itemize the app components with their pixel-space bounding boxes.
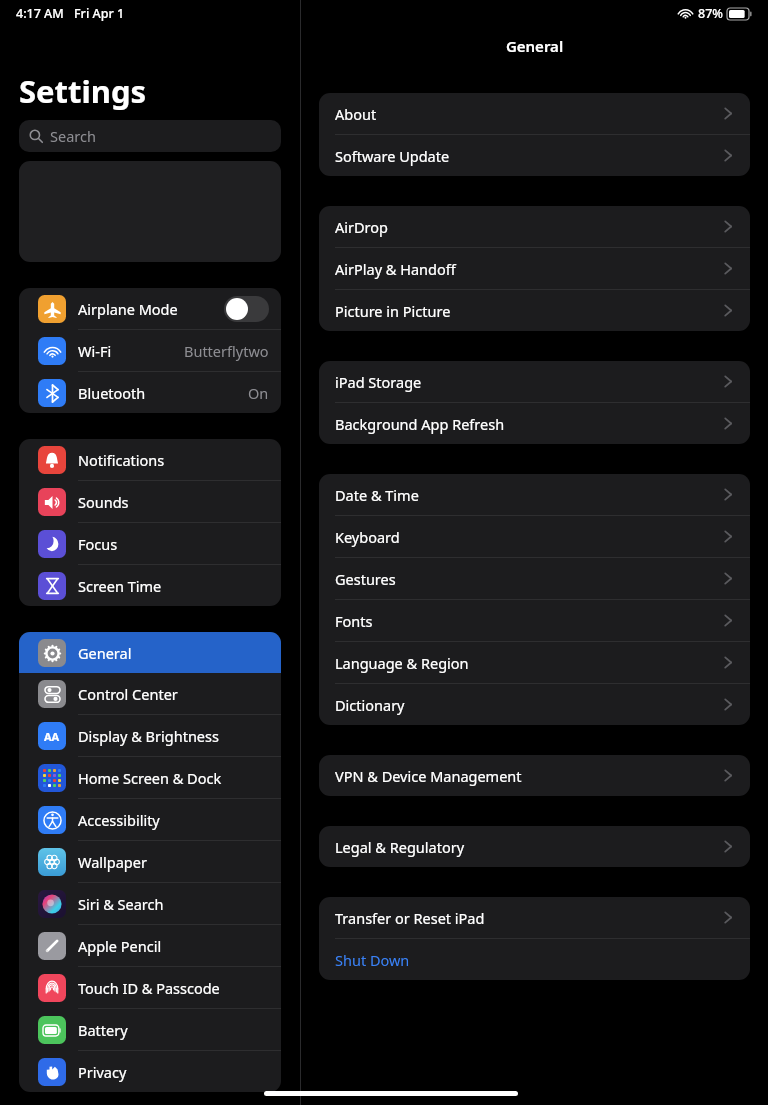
staticText: Fri Apr 1 [74, 5, 125, 22]
staticText: Keyboard [335, 527, 724, 547]
button[interactable]: Gestures [319, 558, 750, 599]
button[interactable]: Language & Region [319, 642, 750, 683]
button[interactable]: Airplane Mode [19, 288, 281, 330]
staticText: Bluetooth [78, 383, 248, 403]
staticText: Date & Time [335, 485, 724, 505]
button[interactable]: Background App Refresh [319, 403, 750, 444]
staticText: Legal & Regulatory [335, 837, 724, 857]
staticText: Notifications [78, 450, 269, 470]
staticText: AirDrop [335, 217, 724, 237]
button[interactable]: Wi-Fi [19, 330, 281, 372]
button[interactable]: AA [19, 715, 281, 757]
staticText: Apple Pencil [78, 936, 269, 956]
staticText: Battery [78, 1020, 269, 1040]
staticText: Fonts [335, 611, 724, 631]
staticText: Airplane Mode [78, 299, 224, 319]
button[interactable]: Notifications [19, 439, 281, 481]
staticText: VPN & Device Management [335, 766, 724, 786]
staticText: Home Screen & Dock [78, 768, 269, 788]
button[interactable]: Keyboard [319, 516, 750, 557]
button[interactable]: Bluetooth [19, 372, 281, 413]
staticText: Gestures [335, 569, 724, 589]
button[interactable]: Transfer or Reset iPad [319, 897, 750, 938]
button[interactable]: Touch ID & Passcode [19, 967, 281, 1009]
button[interactable]: Picture in Picture [319, 290, 750, 331]
staticText: AirPlay & Handoff [335, 259, 724, 279]
button[interactable]: Siri & Search [19, 883, 281, 925]
button[interactable]: Legal & Regulatory [319, 826, 750, 867]
staticText: Control Center [78, 684, 269, 704]
staticText: Search [50, 126, 96, 146]
button[interactable]: iPad Storage [319, 361, 750, 402]
staticText: Language & Region [335, 653, 724, 673]
button[interactable]: General [19, 632, 281, 673]
staticText: Software Update [335, 146, 724, 166]
staticText: Settings [19, 70, 147, 112]
button[interactable]: Wallpaper [19, 841, 281, 883]
button[interactable]: AirPlay & Handoff [319, 248, 750, 289]
button[interactable]: Apple Pencil [19, 925, 281, 967]
button[interactable]: Software Update [319, 135, 750, 176]
button[interactable]: Search [19, 120, 281, 152]
staticText: Screen Time [78, 576, 269, 596]
staticText: Privacy [78, 1062, 269, 1082]
staticText: Touch ID & Passcode [78, 978, 269, 998]
staticText: Focus [78, 534, 269, 554]
staticText: General [301, 36, 768, 56]
staticText: Dictionary [335, 695, 724, 715]
button[interactable]: Control Center [19, 673, 281, 715]
staticText: Shut Down [335, 950, 732, 970]
button[interactable]: Airplane Mode toggle [224, 296, 269, 322]
button[interactable]: VPN & Device Management [319, 755, 750, 796]
staticText: Wallpaper [78, 852, 269, 872]
staticText: Accessibility [78, 810, 269, 830]
button[interactable]: AirDrop [319, 206, 750, 247]
staticText: AA [44, 729, 60, 744]
staticText: On [248, 383, 269, 403]
button[interactable]: Dictionary [319, 684, 750, 725]
staticText: 4:17 AM [16, 5, 64, 22]
button[interactable]: Privacy [19, 1051, 281, 1092]
staticText: Transfer or Reset iPad [335, 908, 724, 928]
staticText: About [335, 104, 724, 124]
button[interactable]: Focus [19, 523, 281, 565]
staticText: Picture in Picture [335, 301, 724, 321]
button[interactable]: About [319, 93, 750, 134]
button[interactable]: Battery [19, 1009, 281, 1051]
staticText: Sounds [78, 492, 269, 512]
staticText: Wi-Fi [78, 341, 184, 361]
button[interactable]: Shut Down [319, 939, 750, 980]
staticText: Butterflytwo [184, 341, 269, 361]
staticText: iPad Storage [335, 372, 724, 392]
button[interactable]: Home Screen & Dock [19, 757, 281, 799]
button[interactable]: Fonts [319, 600, 750, 641]
button[interactable]: Sounds [19, 481, 281, 523]
staticText: Display & Brightness [78, 726, 269, 746]
button[interactable]: Screen Time [19, 565, 281, 606]
staticText: General [78, 643, 269, 663]
staticText: Siri & Search [78, 894, 269, 914]
staticText: Background App Refresh [335, 414, 724, 434]
staticText: 87% [698, 5, 723, 22]
button[interactable]: Accessibility [19, 799, 281, 841]
button[interactable]: Date & Time [319, 474, 750, 515]
